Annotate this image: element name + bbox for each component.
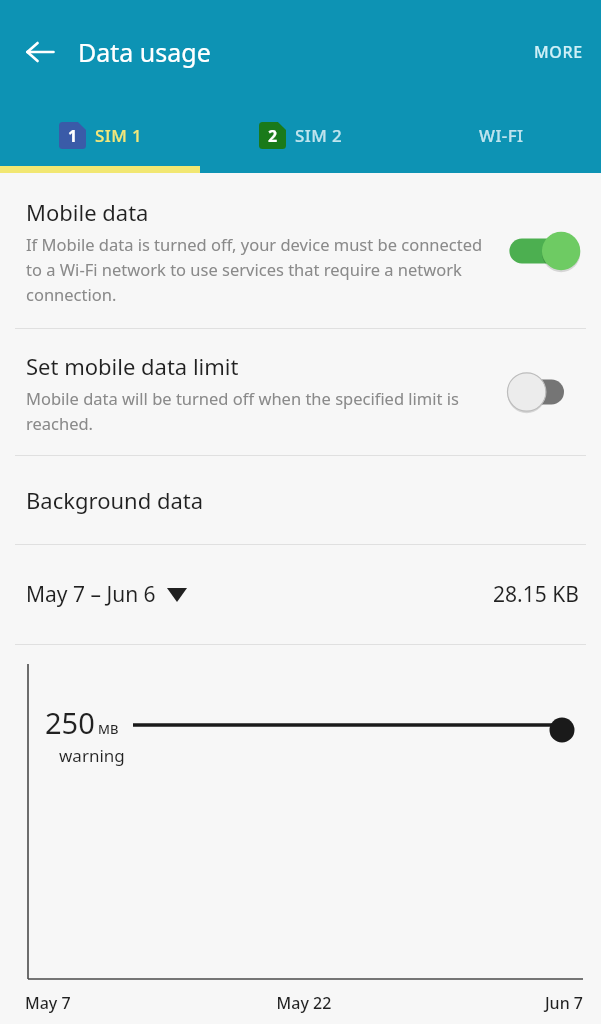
button[interactable]: MORE xyxy=(516,29,601,75)
staticText: May 7 xyxy=(25,992,211,1014)
staticText: 2 xyxy=(268,125,278,147)
staticText: Jun 7 xyxy=(397,992,583,1014)
button[interactable]: 250 xyxy=(0,645,601,1024)
staticText: Data usage xyxy=(78,35,211,69)
staticText: SIM 1 xyxy=(95,124,143,147)
button[interactable]: May 7 – Jun 6 xyxy=(0,545,601,644)
button[interactable]: Mobile data xyxy=(0,173,601,328)
staticText: SIM 2 xyxy=(295,124,343,147)
staticText: 28.15 KB xyxy=(493,580,579,609)
staticText: Set mobile data limit xyxy=(26,351,239,381)
staticText: warning xyxy=(59,744,125,767)
button[interactable]: 2 xyxy=(201,104,401,173)
staticText: If Mobile data is turned off, your devic… xyxy=(26,233,493,305)
staticText: Mobile data xyxy=(26,197,149,227)
button[interactable]: Background data xyxy=(0,456,601,544)
staticText: MB xyxy=(98,720,119,738)
button[interactable]: WI-FI xyxy=(401,104,601,173)
button[interactable]: 1 xyxy=(0,104,201,173)
staticText: 1 xyxy=(68,125,78,147)
staticText: May 22 xyxy=(211,992,397,1014)
button[interactable]: Back xyxy=(14,26,66,78)
staticText: 250 xyxy=(45,703,95,742)
staticText: Background data xyxy=(26,485,204,515)
staticText: Mobile data will be turned off when the … xyxy=(26,387,493,434)
button[interactable]: Set mobile data limit xyxy=(0,329,601,455)
staticText: May 7 – Jun 6 xyxy=(26,580,156,609)
button[interactable]: Mobile data toggle, on xyxy=(505,223,581,279)
staticText: MORE xyxy=(534,41,583,63)
button[interactable]: Set mobile data limit toggle, off xyxy=(505,364,581,420)
staticText: WI-FI xyxy=(479,124,524,147)
